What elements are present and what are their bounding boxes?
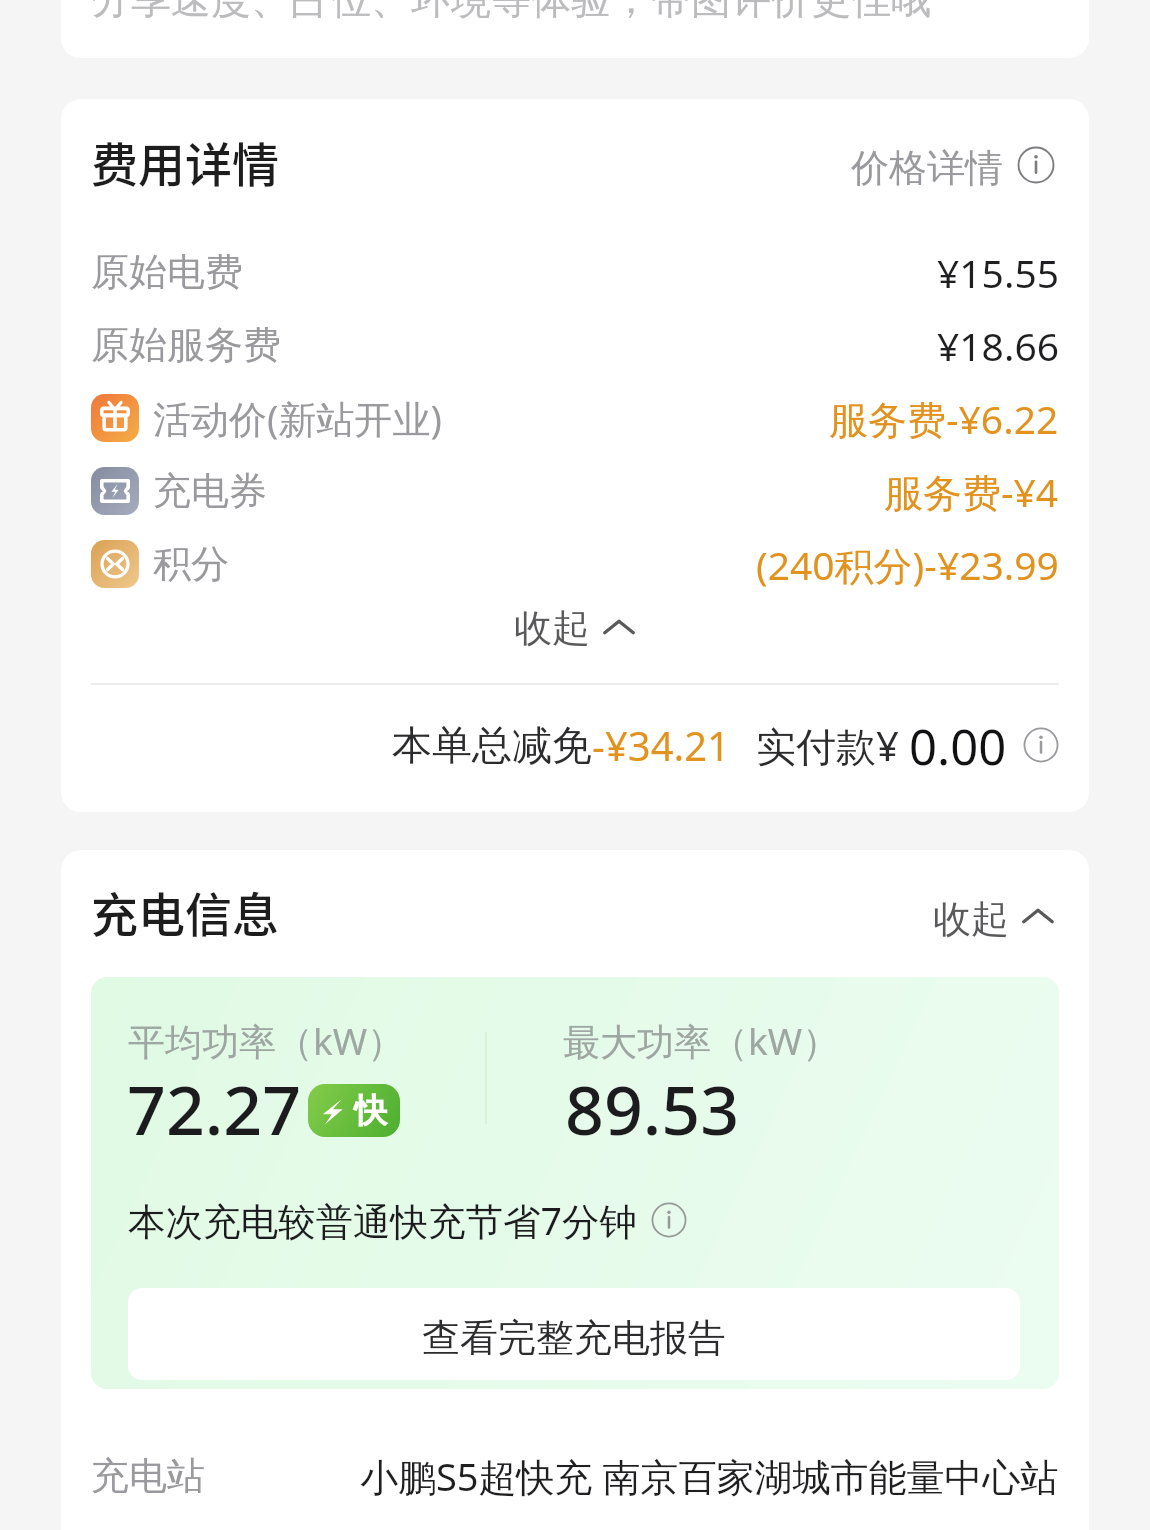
staticText: 充电券 [153, 467, 267, 515]
staticText: 充电站 [91, 1452, 205, 1500]
staticText: 实付款¥ [756, 718, 899, 773]
staticText: 快 [354, 1090, 387, 1132]
staticText: 服务费-¥6.22 [829, 392, 1059, 445]
button[interactable]: 收起 [504, 598, 646, 658]
staticText: 服务费-¥4 [884, 465, 1059, 518]
staticText: 72.27 [127, 1062, 302, 1155]
staticText: ¥15.55 [937, 246, 1059, 299]
staticText: 0.00 [909, 713, 1007, 777]
staticText: 小鹏S5超快充 南京百家湖城市能量中心站 [360, 1450, 1059, 1502]
button[interactable]: 积分 [61, 528, 1089, 600]
staticText: 价格详情 [851, 144, 1003, 192]
staticText: 平均功率（kW） [128, 1015, 405, 1066]
button[interactable]: 节省时间说明 [651, 1202, 687, 1238]
staticText: ¥18.66 [937, 319, 1059, 372]
staticText: 查看完整充电报告 [422, 1314, 726, 1362]
staticText: 原始电费 [91, 248, 243, 296]
staticText: 原始服务费 [91, 321, 281, 369]
staticText: 最大功率（kW） [563, 1015, 840, 1066]
button[interactable]: 原始电费 [61, 236, 1089, 308]
button[interactable]: 收起 [929, 883, 1059, 939]
button[interactable]: 实付款说明 [1023, 727, 1059, 763]
staticText: 费用详情 [91, 127, 279, 195]
staticText: 收起 [933, 895, 1009, 943]
staticText: 89.53 [565, 1062, 740, 1155]
staticText: 收起 [514, 604, 590, 652]
button[interactable]: 活动价(新站开业) [61, 382, 1089, 454]
staticText: 本次充电较普通快充节省7分钟 [128, 1195, 637, 1246]
staticText: (240积分)-¥23.99 [756, 538, 1059, 591]
button[interactable]: 充电券 [61, 455, 1089, 527]
staticText: 活动价(新站开业) [153, 392, 442, 444]
button[interactable]: 原始服务费 [61, 309, 1089, 381]
button[interactable]: 价格详情 [847, 133, 1059, 189]
staticText: 积分 [153, 540, 229, 588]
staticText: -¥34.21 [592, 718, 730, 772]
staticText: 充电信息 [91, 877, 279, 945]
button[interactable]: 充电站 [61, 1440, 1089, 1512]
staticText: 分享速度、占位、环境等体验，带图评价更佳哦 [91, 0, 931, 24]
staticText: 本单总减免 [392, 720, 592, 770]
button[interactable]: 查看完整充电报告 [128, 1288, 1020, 1380]
